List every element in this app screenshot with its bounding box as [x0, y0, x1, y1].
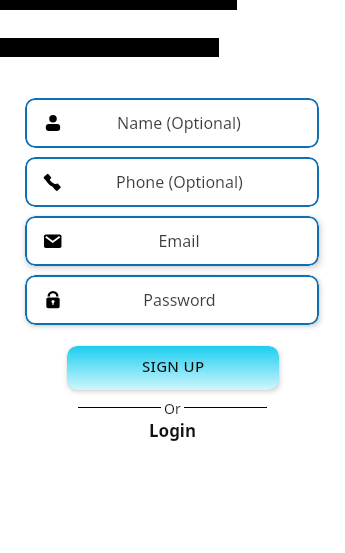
staticText: Name (Optional)	[117, 112, 241, 134]
button[interactable]: Phone (Optional)	[25, 157, 319, 207]
button[interactable]: Password	[25, 275, 319, 325]
staticText: Email	[158, 230, 200, 252]
staticText: SIGN UP	[142, 356, 205, 376]
button[interactable]: Name (Optional)	[25, 98, 319, 148]
staticText: Password	[143, 289, 216, 311]
button[interactable]: Login	[149, 419, 197, 442]
staticText: Or	[164, 399, 181, 415]
staticText: Phone (Optional)	[116, 171, 243, 193]
button[interactable]: Email	[25, 216, 319, 266]
button[interactable]: SIGN UP	[67, 346, 279, 390]
